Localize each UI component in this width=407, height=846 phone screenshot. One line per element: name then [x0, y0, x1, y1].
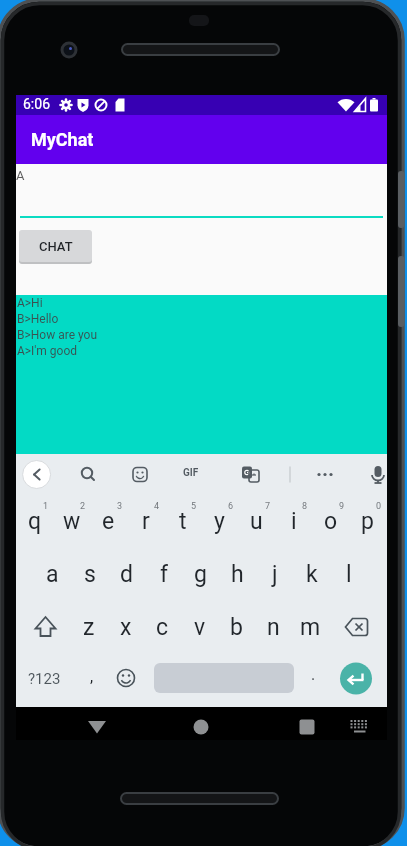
button[interactable]: a: [34, 548, 71, 601]
button[interactable]: CHAT: [19, 230, 92, 262]
staticText: x: [120, 614, 132, 641]
button[interactable]: [16, 601, 70, 654]
button[interactable]: [81, 707, 113, 740]
button[interactable]: h: [219, 548, 256, 601]
staticText: w: [63, 508, 81, 535]
staticText: y: [214, 508, 225, 535]
button[interactable]: p: [349, 495, 386, 548]
button[interactable]: t: [164, 495, 201, 548]
staticText: 0: [376, 501, 382, 512]
button[interactable]: [343, 707, 375, 740]
button[interactable]: l: [330, 548, 367, 601]
staticText: 6:06: [23, 96, 50, 112]
staticText: 2: [80, 501, 86, 512]
button[interactable]: ,: [90, 667, 94, 686]
button[interactable]: m: [292, 601, 329, 654]
button[interactable]: [340, 662, 373, 695]
staticText: 6: [228, 501, 234, 512]
staticText: 1: [43, 501, 49, 512]
button[interactable]: v: [181, 601, 218, 654]
button[interactable]: n: [255, 601, 292, 654]
staticText: h: [231, 561, 244, 588]
button[interactable]: s: [71, 548, 108, 601]
button[interactable]: f: [145, 548, 182, 601]
staticText: c: [156, 614, 169, 641]
staticText: k: [306, 561, 318, 588]
staticText: 9: [339, 501, 345, 512]
staticText: A>I'm good: [17, 344, 78, 358]
staticText: A>Hi: [17, 296, 43, 310]
button[interactable]: [329, 601, 387, 654]
button[interactable]: z: [70, 601, 107, 654]
staticText: v: [194, 614, 206, 641]
staticText: l: [346, 561, 352, 588]
button[interactable]: d: [108, 548, 145, 601]
staticText: 3: [117, 501, 123, 512]
staticText: m: [300, 614, 321, 641]
staticText: p: [361, 508, 374, 535]
button[interactable]: ?123: [28, 670, 61, 688]
button[interactable]: i: [275, 495, 312, 548]
staticText: d: [120, 561, 133, 588]
button[interactable]: c: [144, 601, 181, 654]
staticText: b: [230, 614, 243, 641]
staticText: z: [83, 614, 95, 641]
button[interactable]: o: [312, 495, 349, 548]
button[interactable]: y: [201, 495, 238, 548]
staticText: f: [160, 561, 168, 588]
staticText: j: [272, 561, 278, 588]
staticText: 8: [302, 501, 308, 512]
staticText: t: [179, 508, 187, 535]
button[interactable]: .: [311, 665, 316, 684]
staticText: 4: [154, 501, 160, 512]
staticText: B>Hello: [17, 312, 59, 326]
staticText: MyChat: [31, 129, 94, 150]
button[interactable]: [185, 707, 217, 740]
button[interactable]: r: [127, 495, 164, 548]
staticText: g: [194, 561, 207, 588]
button[interactable]: b: [218, 601, 255, 654]
button[interactable]: k: [293, 548, 330, 601]
staticText: o: [324, 508, 338, 535]
staticText: CHAT: [39, 239, 73, 254]
staticText: u: [250, 508, 263, 535]
button[interactable]: x: [107, 601, 144, 654]
staticText: A: [16, 168, 25, 183]
staticText: i: [291, 508, 297, 535]
staticText: 7: [265, 501, 271, 512]
staticText: e: [102, 508, 115, 535]
staticText: B>How are you: [17, 328, 98, 342]
button[interactable]: g: [182, 548, 219, 601]
staticText: n: [267, 614, 280, 641]
staticText: s: [84, 561, 96, 588]
staticText: 5: [191, 501, 197, 512]
button[interactable]: GIF: [183, 467, 199, 479]
button[interactable]: q: [16, 495, 53, 548]
button[interactable]: w: [53, 495, 90, 548]
button[interactable]: j: [256, 548, 293, 601]
staticText: q: [28, 508, 42, 535]
staticText: r: [142, 508, 150, 535]
button[interactable]: u: [238, 495, 275, 548]
staticText: a: [46, 561, 59, 588]
button[interactable]: e: [90, 495, 127, 548]
button[interactable]: [291, 707, 323, 740]
